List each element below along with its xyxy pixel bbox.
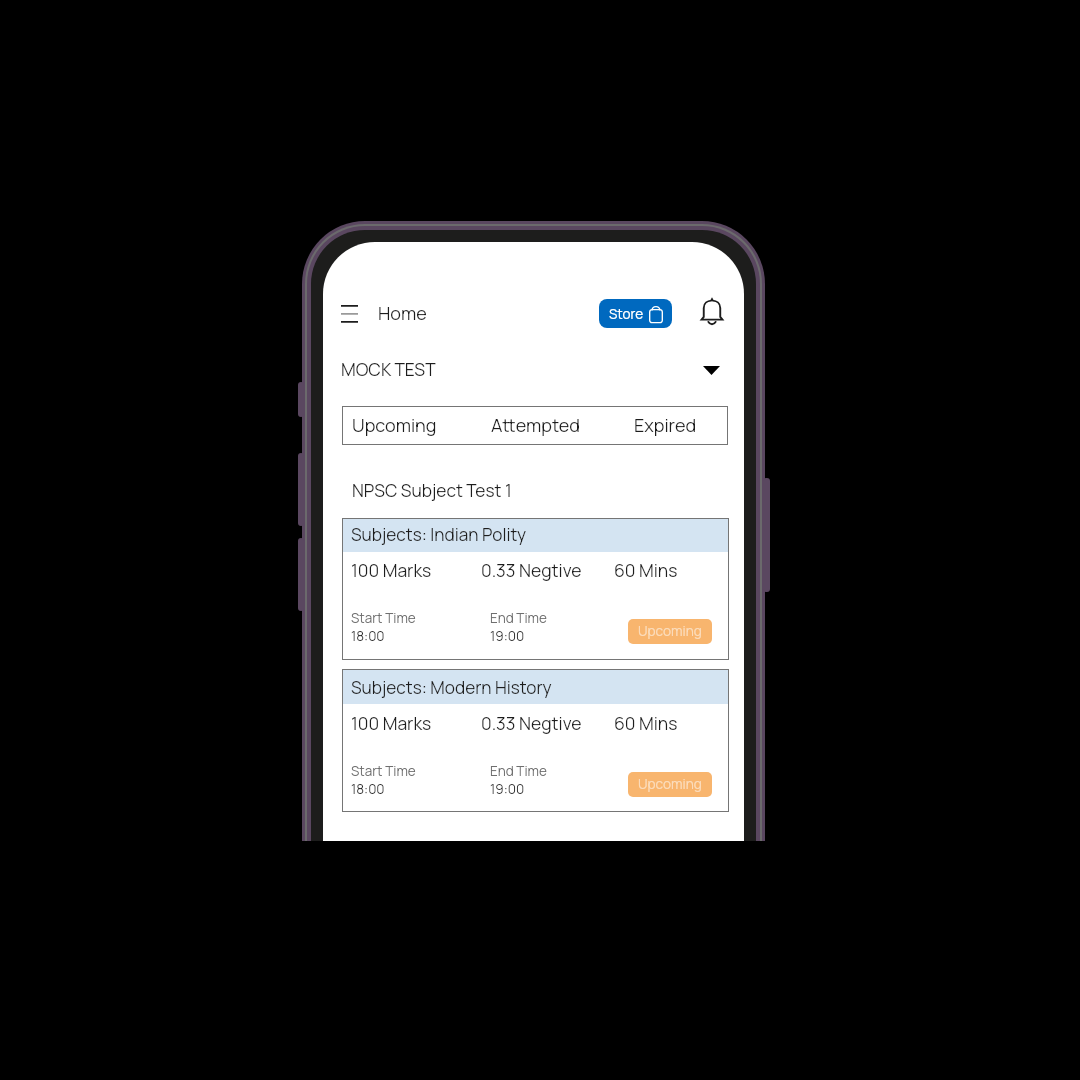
- staticText: 18:00: [351, 780, 385, 798]
- staticText: Home: [378, 301, 427, 326]
- button[interactable]: Subjects: Indian Polity: [342, 518, 729, 660]
- button[interactable]: Store: [599, 299, 672, 328]
- staticText: 60 Mins: [614, 558, 678, 582]
- staticText: Expired: [634, 413, 697, 438]
- staticText: NPSC Subject Test 1: [352, 479, 512, 503]
- staticText: 0.33 Negtive: [481, 558, 582, 582]
- staticText: Upcoming: [638, 622, 702, 641]
- staticText: End Time: [490, 609, 547, 627]
- staticText: Start Time: [351, 762, 416, 780]
- button[interactable]: Expired: [599, 407, 727, 444]
- button[interactable]: Subjects: Modern History: [342, 669, 729, 812]
- staticText: Attempted: [491, 413, 580, 438]
- staticText: 100 Marks: [351, 711, 432, 735]
- staticText: 19:00: [490, 780, 525, 798]
- button[interactable]: Attempted: [471, 407, 599, 444]
- button[interactable]: Notifications: [698, 298, 726, 326]
- staticText: Subjects: Modern History: [351, 676, 552, 699]
- staticText: End Time: [490, 762, 547, 780]
- staticText: Subjects: Indian Polity: [351, 523, 527, 546]
- button[interactable]: Upcoming: [343, 407, 471, 444]
- staticText: 19:00: [490, 627, 525, 645]
- staticText: 18:00: [351, 627, 385, 645]
- button[interactable]: Upcoming: [628, 772, 712, 797]
- button[interactable]: Open navigation menu: [334, 298, 364, 328]
- staticText: Upcoming: [352, 413, 437, 438]
- staticText: Store: [609, 305, 644, 323]
- staticText: Upcoming: [638, 775, 702, 794]
- staticText: 100 Marks: [351, 558, 432, 582]
- button[interactable]: Upcoming: [628, 619, 712, 644]
- button[interactable]: MOCK TEST: [323, 351, 744, 387]
- staticText: MOCK TEST: [341, 357, 436, 381]
- staticText: 60 Mins: [614, 711, 678, 735]
- staticText: 0.33 Negtive: [481, 711, 582, 735]
- staticText: Start Time: [351, 609, 416, 627]
